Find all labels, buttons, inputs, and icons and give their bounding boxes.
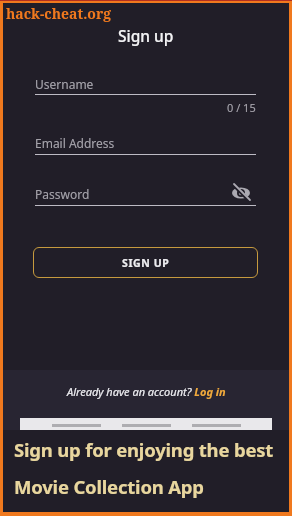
staticText: SIGN UP	[122, 256, 170, 270]
button[interactable]	[229, 184, 253, 204]
staticText: Already have an account? Log in	[67, 384, 226, 399]
button[interactable]: SIGN UP	[33, 247, 258, 278]
staticText: Movie Collection App	[14, 474, 204, 499]
staticText: Username	[35, 76, 94, 92]
staticText: 0 / 15	[227, 100, 256, 115]
staticText: Sign up	[118, 25, 174, 46]
staticText: Email Address	[35, 135, 115, 151]
button[interactable]: Already have an account? Log in	[0, 384, 292, 399]
staticText: hack-cheat.org	[6, 4, 112, 23]
staticText: Password	[35, 186, 90, 202]
staticText: Sign up for enjoying the best	[14, 437, 274, 462]
